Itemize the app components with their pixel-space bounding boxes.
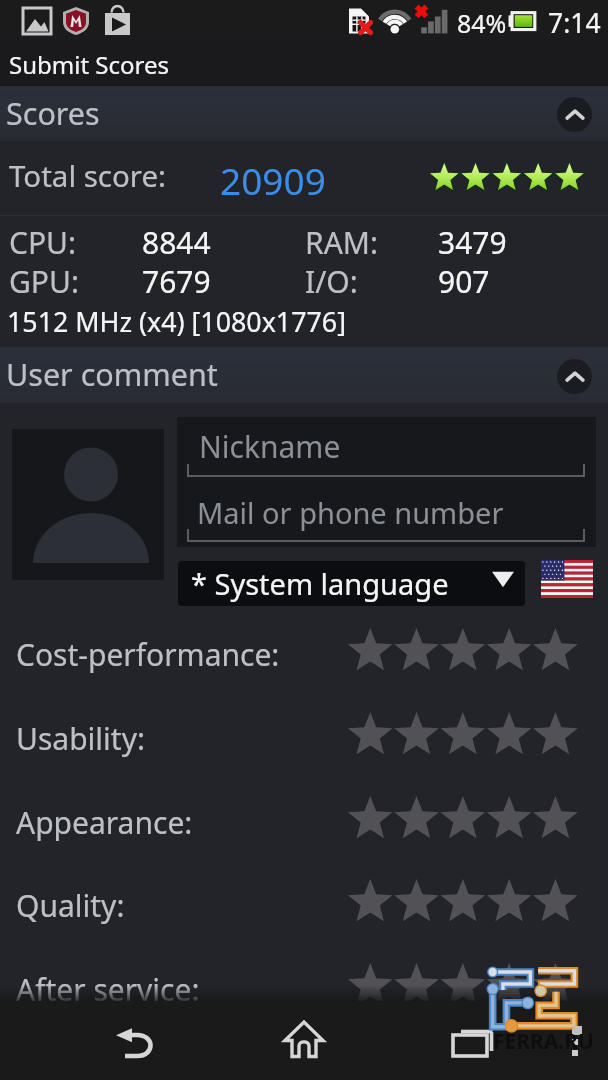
- button[interactable]: Appearance:: [0, 780, 608, 864]
- staticText: Cost-performance:: [16, 634, 280, 675]
- staticText: CPU:: [9, 222, 77, 263]
- staticText: 7679: [142, 261, 211, 302]
- staticText: User comment: [6, 353, 218, 395]
- staticText: Usability:: [16, 718, 145, 759]
- staticText: 907: [438, 261, 490, 302]
- button[interactable]: Collapse section: [557, 359, 592, 394]
- staticText: After service:: [16, 969, 200, 1010]
- button[interactable]: Mail or phone number: [177, 482, 596, 544]
- staticText: Mail or phone number: [197, 493, 504, 532]
- button[interactable]: User comment: [0, 347, 608, 403]
- button[interactable]: Usability:: [0, 696, 608, 780]
- staticText: 3479: [438, 222, 507, 263]
- staticText: RAM:: [305, 222, 379, 263]
- staticText: Submit Scores: [9, 48, 169, 81]
- staticText: GPU:: [9, 261, 79, 302]
- staticText: 84%: [457, 6, 507, 40]
- staticText: * System language: [191, 564, 449, 603]
- staticText: FERRA.RU: [493, 1027, 594, 1056]
- button[interactable]: Language flag: [541, 560, 593, 598]
- button[interactable]: After service:: [0, 947, 608, 1031]
- button[interactable]: Back: [75, 1001, 195, 1080]
- staticText: Nickname: [199, 426, 341, 467]
- staticText: 1512 MHz (x4) [1080x1776]: [7, 303, 346, 340]
- staticText: Quality:: [16, 885, 125, 926]
- staticText: Appearance:: [16, 802, 193, 843]
- button[interactable]: Nickname: [177, 417, 596, 479]
- button[interactable]: Recent apps: [410, 1001, 530, 1080]
- button[interactable]: Cost-performance:: [0, 612, 608, 696]
- staticText: 7:14: [548, 5, 601, 41]
- staticText: Scores: [6, 92, 100, 134]
- button[interactable]: Scores: [0, 86, 608, 141]
- button[interactable]: Menu: [572, 1028, 579, 1056]
- button[interactable]: Collapse section: [557, 97, 592, 132]
- button[interactable]: Choose avatar: [12, 429, 164, 580]
- staticText: I/O:: [305, 261, 358, 302]
- button[interactable]: Home: [244, 1001, 364, 1080]
- staticText: 8844: [142, 222, 211, 263]
- staticText: 20909: [220, 155, 326, 205]
- button[interactable]: Quality:: [0, 863, 608, 947]
- staticText: Total score:: [9, 155, 166, 195]
- button[interactable]: * System language: [178, 561, 525, 606]
